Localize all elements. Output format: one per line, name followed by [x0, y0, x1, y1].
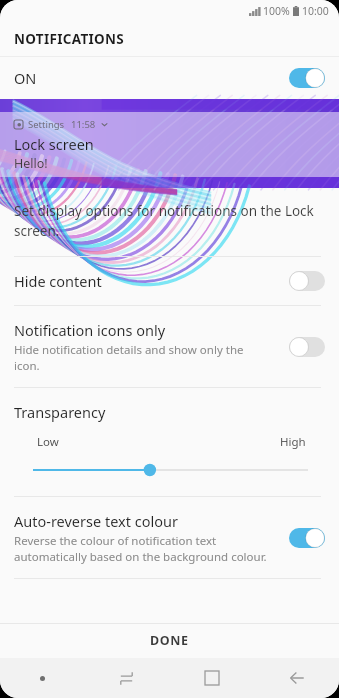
button[interactable]: Notification icons only — [0, 306, 339, 387]
button[interactable]: Back — [254, 658, 339, 698]
staticText: Hide content — [14, 271, 102, 291]
staticText: Notification icons only — [14, 320, 166, 340]
staticText: Low — [37, 434, 59, 450]
staticText: Reverse the colour of notification text … — [14, 533, 267, 564]
staticText: Settings — [28, 118, 65, 131]
button[interactable]: Switch apps — [84, 658, 169, 698]
staticText: 10:00 — [302, 4, 329, 18]
staticText: Set display options for notifications on… — [14, 202, 314, 240]
staticText: High — [280, 434, 306, 450]
button[interactable]: Transparency slider — [0, 460, 339, 480]
button[interactable]: Toggle off — [289, 337, 325, 357]
button[interactable]: Hide content — [0, 257, 339, 305]
staticText: 11:58 — [71, 118, 96, 131]
button[interactable]: Pin navigation bar — [0, 658, 84, 698]
staticText: Lock screen — [14, 134, 94, 154]
button[interactable]: Auto-reverse text colour — [0, 497, 339, 578]
staticText: DONE — [150, 632, 189, 649]
button[interactable]: DONE — [0, 623, 339, 658]
staticText: NOTIFICATIONS — [14, 30, 125, 48]
button[interactable]: Recent apps — [169, 658, 254, 698]
button[interactable]: Toggle on — [289, 528, 325, 548]
staticText: Hide notification details and show only … — [14, 342, 244, 373]
staticText: Transparency — [14, 402, 106, 422]
staticText: Auto-reverse text colour — [14, 511, 178, 531]
button[interactable]: Toggle off — [289, 271, 325, 291]
staticText: 100% — [263, 4, 290, 18]
button[interactable]: ON — [0, 57, 339, 99]
staticText: ON — [14, 68, 37, 88]
staticText: Hello! — [14, 155, 48, 172]
button[interactable]: Toggle on — [289, 68, 325, 88]
